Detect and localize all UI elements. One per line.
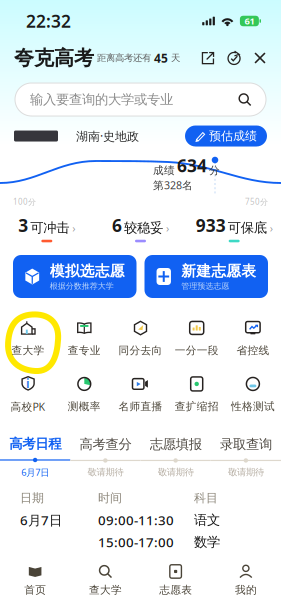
staticText: ›: [163, 221, 169, 235]
staticText: 750分: [245, 196, 268, 207]
button[interactable]: 志愿表: [140, 563, 211, 596]
staticText: ›: [267, 221, 273, 235]
staticText: 成绩: [153, 164, 175, 177]
button[interactable]: 测概率: [56, 375, 112, 413]
staticText: 日期: [20, 491, 44, 505]
staticText: 根据分数推荐大学: [50, 281, 114, 291]
staticText: 科目: [194, 491, 218, 505]
staticText: 名师直播: [118, 400, 162, 413]
staticText: 模拟选志愿: [50, 262, 125, 280]
button[interactable]: 新建志愿表: [144, 255, 268, 298]
button[interactable]: Close: [247, 45, 273, 71]
staticText: 6: [112, 214, 122, 237]
staticText: 634: [177, 154, 207, 177]
button[interactable]: 预估成绩: [185, 125, 267, 146]
button[interactable]: 查大学: [0, 319, 56, 357]
staticText: 高考日程: [9, 436, 61, 452]
button[interactable]: 我的: [211, 563, 281, 596]
staticText: 同分去向: [118, 344, 162, 357]
staticText: 6月7日: [20, 511, 62, 529]
button[interactable]: 首页: [0, 563, 70, 596]
staticText: 新建志愿表: [181, 262, 256, 280]
button[interactable]: 高考日程: [0, 436, 70, 478]
staticText: 数学: [194, 534, 220, 550]
staticText: 性格测试: [231, 400, 275, 413]
staticText: ›: [69, 221, 75, 235]
staticText: 高校PK: [11, 399, 46, 414]
staticText: 语文: [194, 512, 220, 528]
staticText: 测概率: [68, 400, 101, 413]
staticText: 查扩缩招: [175, 400, 219, 413]
staticText: 省控线: [236, 344, 269, 357]
staticText: 可保底: [228, 220, 267, 236]
button[interactable]: 录取查询: [211, 436, 281, 478]
staticText: 首页: [24, 583, 46, 596]
staticText: 预估成绩: [209, 129, 257, 143]
staticText: 查大学: [12, 344, 45, 357]
staticText: 时间: [98, 491, 122, 505]
staticText: 6月7日: [21, 466, 49, 478]
button[interactable]: 名师直播: [112, 375, 169, 413]
staticText: 分: [209, 164, 220, 177]
staticText: 志愿填报: [150, 436, 202, 452]
button[interactable]: 模拟选志愿: [13, 255, 136, 298]
staticText: i: [26, 375, 30, 391]
button[interactable]: i: [0, 374, 56, 414]
staticText: 查专业: [68, 344, 101, 357]
button[interactable]: 志愿填报: [140, 436, 211, 478]
staticText: 09:00-11:30: [98, 511, 174, 529]
button[interactable]: 933: [187, 214, 281, 242]
staticText: 可冲击: [30, 220, 69, 236]
staticText: 第328名: [153, 178, 193, 192]
staticText: 距离高考还有: [94, 52, 151, 64]
staticText: 天: [168, 52, 180, 64]
staticText: 15:00-17:00: [98, 533, 174, 551]
staticText: 志愿表: [159, 583, 192, 596]
staticText: 敬请期待: [228, 466, 264, 478]
staticText: 我的: [235, 583, 257, 596]
staticText: 输入要查询的大学或专业: [30, 91, 173, 108]
staticText: 一分一段: [175, 344, 219, 357]
button[interactable]: Refresh: [221, 45, 247, 71]
button[interactable]: 3: [0, 214, 94, 242]
staticText: 录取查询: [220, 436, 272, 452]
button[interactable]: 查专业: [56, 319, 112, 357]
staticText: 100分: [13, 196, 36, 207]
button[interactable]: 查大学: [70, 563, 140, 596]
button[interactable]: 一分一段: [169, 319, 225, 357]
staticText: 湖南·史地政: [76, 128, 139, 144]
staticText: 夸克高考: [14, 46, 94, 70]
button[interactable]: 高考查分: [70, 436, 140, 478]
staticText: 敬请期待: [87, 466, 123, 478]
staticText: 管理预选志愿: [181, 281, 229, 291]
button[interactable]: Share: [195, 45, 221, 71]
staticText: 933: [196, 214, 226, 237]
staticText: 查大学: [89, 583, 122, 596]
staticText: 较稳妥: [124, 220, 163, 236]
staticText: 45: [151, 50, 168, 66]
button[interactable]: 省控线: [225, 319, 281, 357]
staticText: 高考查分: [79, 436, 131, 452]
staticText: 22:32: [26, 9, 71, 32]
button[interactable]: 输入要查询的大学或专业: [15, 83, 266, 116]
button[interactable]: 6: [94, 214, 187, 242]
staticText: 敬请期待: [158, 466, 194, 478]
button[interactable]: 同分去向: [112, 319, 169, 357]
button[interactable]: 查扩缩招: [169, 375, 225, 413]
button[interactable]: 性格测试: [225, 375, 281, 413]
staticText: 3: [18, 214, 28, 237]
staticText: 61: [244, 15, 254, 27]
